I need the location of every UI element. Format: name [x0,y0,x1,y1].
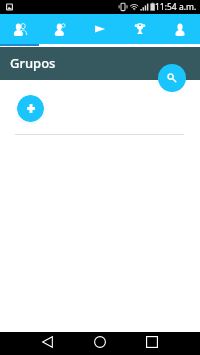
button[interactable]: Recents [134,330,170,353]
staticText: Grupos [10,54,56,72]
staticText: 11:54 a.m. [155,1,197,13]
button[interactable]: Home [82,330,118,353]
button[interactable]: Add contact [40,14,80,44]
button[interactable]: Search [158,64,186,92]
button[interactable]: Trophies [120,14,160,44]
button[interactable]: Add group [17,95,44,122]
button[interactable]: Back [29,330,65,353]
button[interactable]: Play [80,14,120,44]
button[interactable]: Groups [0,14,40,44]
button[interactable]: Profile [160,14,200,44]
